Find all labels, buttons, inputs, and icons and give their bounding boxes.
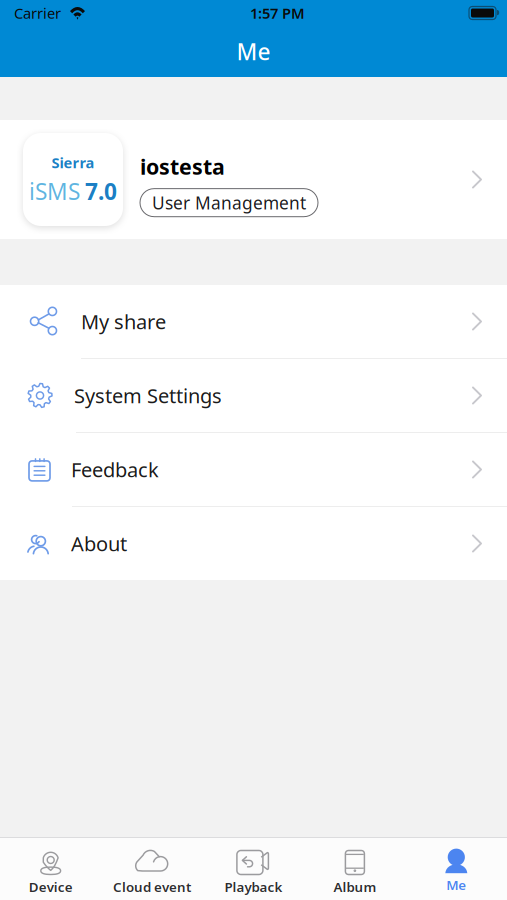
button[interactable]: Device [0,838,101,900]
staticText: User Management [152,191,306,214]
staticText: 7.0 [85,176,117,206]
staticText: iostesta [140,152,225,181]
button[interactable]: My share [0,285,507,358]
staticText: About [71,530,127,557]
button[interactable]: Playback [203,838,304,900]
button[interactable]: System Settings [0,359,507,432]
staticText: iSMS [29,176,80,206]
staticText: Device [29,878,73,896]
staticText: 1:57 PM [250,3,305,23]
staticText: System Settings [74,382,222,409]
staticText: Sierra [51,153,94,172]
staticText: Carrier [14,3,61,23]
staticText: Feedback [71,456,159,483]
button[interactable]: Album [304,838,406,900]
button[interactable]: Feedback [0,433,507,506]
staticText: Me [236,36,270,66]
button[interactable]: Cloud event [101,838,203,900]
button[interactable]: About [0,507,507,580]
staticText: Album [333,878,376,896]
staticText: My share [81,308,166,335]
staticText: Playback [224,878,282,896]
staticText: Me [446,876,466,894]
button[interactable]: Me [406,838,507,900]
staticText: Cloud event [113,878,191,896]
button[interactable]: Sierra [0,120,507,239]
